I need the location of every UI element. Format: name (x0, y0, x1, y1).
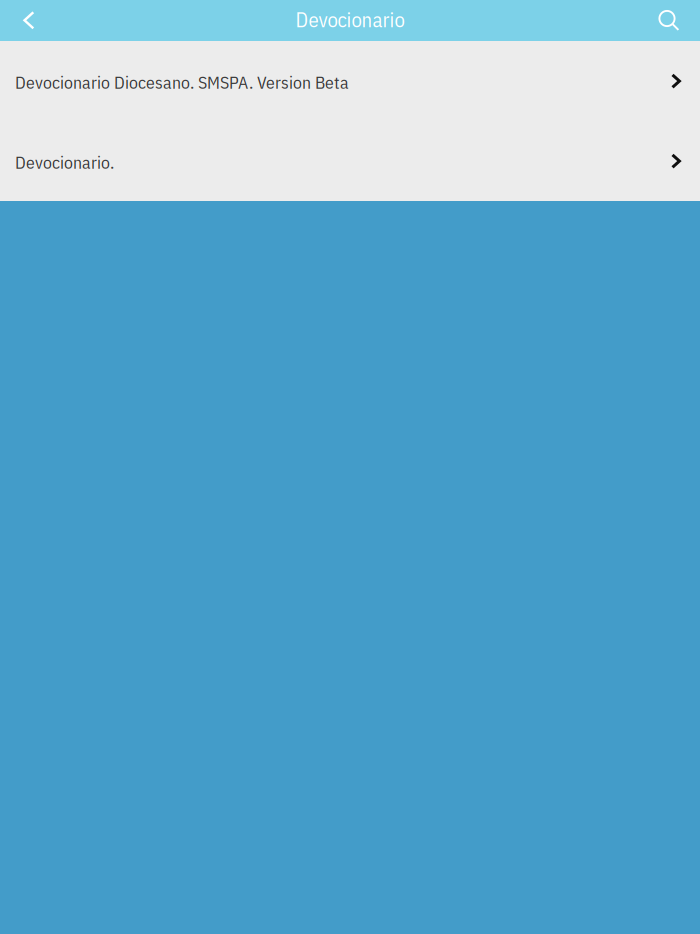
button[interactable]: Search (638, 0, 700, 41)
button[interactable]: Devocionario Diocesano. SMSPA. Version B… (0, 41, 700, 121)
staticText: Devocionario. (15, 150, 114, 173)
button[interactable]: Back (0, 0, 58, 41)
staticText: Devocionario (295, 6, 404, 33)
staticText: Devocionario Diocesano. SMSPA. Version B… (15, 70, 349, 93)
button[interactable]: Devocionario. (0, 121, 700, 201)
